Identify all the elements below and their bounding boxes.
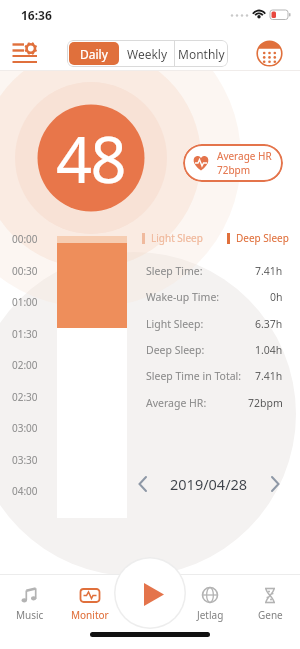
staticText: 7.41h — [255, 369, 283, 383]
button[interactable]: Average HR — [183, 144, 283, 182]
staticText: Sleep Time: — [146, 264, 203, 278]
staticText: 2019/04/28 — [170, 474, 248, 494]
staticText: Deep Sleep — [236, 231, 289, 245]
staticText: 01:00 — [12, 295, 38, 309]
staticText: 03:00 — [12, 421, 38, 435]
button[interactable] — [125, 569, 175, 619]
staticText: 72bpm — [248, 396, 283, 410]
staticText: Wake-up Time: — [146, 290, 220, 304]
button[interactable]: Gene — [246, 586, 294, 630]
staticText: 6.37h — [255, 317, 283, 331]
button[interactable] — [256, 40, 283, 67]
button[interactable]: Daily — [69, 42, 119, 65]
staticText: 1.04h — [255, 343, 283, 357]
staticText: Gene — [258, 608, 283, 622]
staticText: Monitor — [71, 608, 109, 622]
staticText: Jetlag — [197, 608, 224, 622]
staticText: 7.41h — [255, 264, 283, 278]
staticText: 0h — [270, 290, 283, 304]
button[interactable] — [8, 40, 42, 68]
staticText: Light Sleep: — [146, 317, 204, 331]
staticText: Light Sleep — [151, 231, 203, 245]
staticText: Average HR: — [146, 396, 207, 410]
staticText: Music — [16, 608, 44, 622]
staticText: 03:30 — [12, 453, 38, 467]
button[interactable]: Jetlag — [186, 586, 234, 630]
staticText: Average HR — [217, 149, 272, 163]
button[interactable]: 2019/04/28 — [138, 470, 280, 498]
staticText: 00:00 — [12, 232, 38, 246]
staticText: 72bpm — [217, 163, 251, 177]
staticText: Daily — [80, 46, 108, 62]
button[interactable]: Weekly — [121, 40, 174, 67]
staticText: 02:00 — [12, 358, 38, 372]
button[interactable]: Monthly — [175, 40, 228, 67]
staticText: Monthly — [178, 46, 225, 62]
staticText: 01:30 — [12, 327, 38, 341]
staticText: 04:00 — [12, 484, 38, 498]
staticText: Deep Sleep: — [146, 343, 205, 357]
staticText: Sleep Time in Total: — [146, 369, 242, 383]
staticText: 02:30 — [12, 390, 38, 404]
staticText: 16:36 — [21, 7, 52, 23]
button[interactable]: Music — [6, 586, 54, 630]
staticText: 00:30 — [12, 264, 38, 278]
staticText: 48 — [56, 116, 126, 202]
staticText: Weekly — [127, 46, 168, 62]
button[interactable]: Monitor — [66, 586, 114, 630]
